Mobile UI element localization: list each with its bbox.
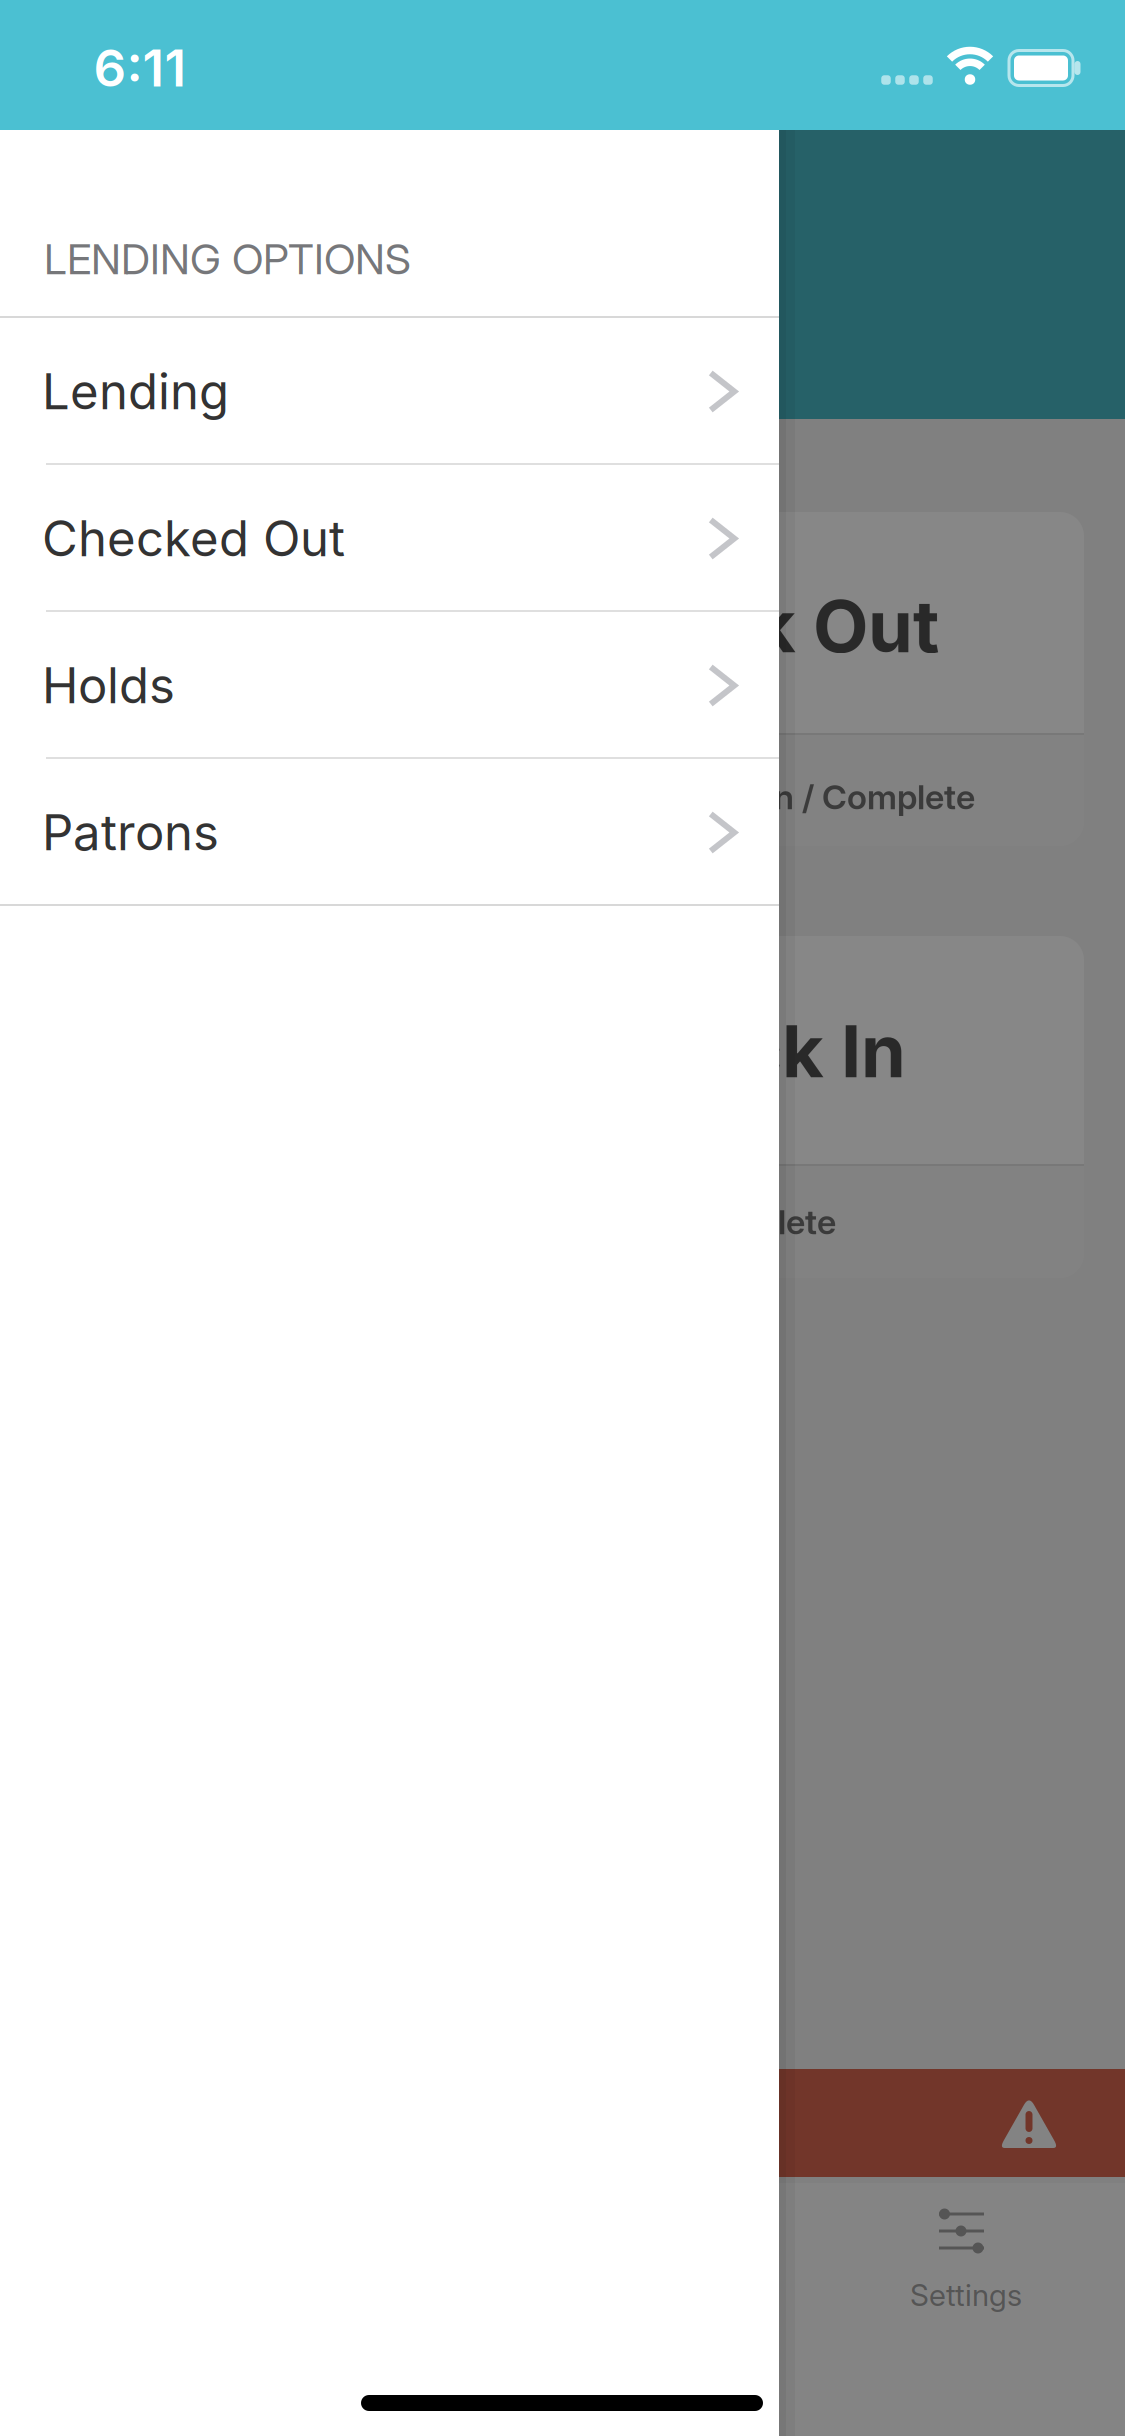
staticText: Patrons xyxy=(42,803,219,862)
staticText: Scan / Complete xyxy=(575,1201,836,1242)
staticText: Holds xyxy=(42,656,175,715)
staticText: Checked Out xyxy=(42,509,345,568)
button[interactable]: Checked Out xyxy=(0,465,779,610)
button[interactable]: Patrons xyxy=(0,759,779,904)
button[interactable]: Settings xyxy=(861,2185,1061,2315)
staticText: Check Out xyxy=(571,582,939,669)
staticText: 6:11 xyxy=(93,37,186,99)
button[interactable]: Connection warning xyxy=(0,2069,1125,2177)
staticText: Check In xyxy=(599,1007,906,1094)
staticText: Scan in / Complete xyxy=(678,776,975,817)
staticText: Lending xyxy=(42,362,229,421)
button[interactable]: Close menu xyxy=(779,130,1125,2436)
button[interactable]: Check Out xyxy=(41,512,1084,846)
staticText: Settings xyxy=(910,2277,1022,2313)
button[interactable]: Lending xyxy=(0,318,779,463)
button[interactable]: Holds xyxy=(0,612,779,757)
staticText: LENDING OPTIONS xyxy=(44,234,411,284)
button[interactable]: Check In xyxy=(41,936,1084,1278)
